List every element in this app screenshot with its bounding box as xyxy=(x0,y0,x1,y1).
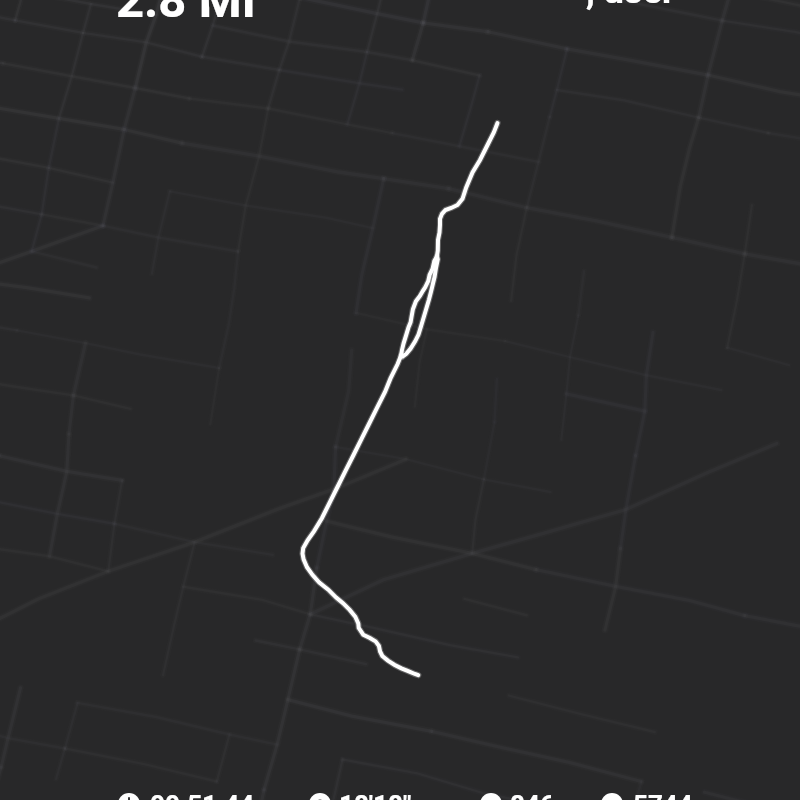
staticText: 18'18" xyxy=(339,790,412,800)
button[interactable]: 5744 xyxy=(601,790,694,800)
staticText: 00:51:44 xyxy=(150,790,255,800)
button[interactable]: 846 xyxy=(480,790,556,800)
staticText: 846 xyxy=(510,790,555,800)
staticText: 5744 xyxy=(633,790,693,800)
button[interactable]: 18'18" xyxy=(309,790,413,800)
button[interactable]: Activity route map xyxy=(0,0,800,800)
staticText: , user xyxy=(586,0,676,12)
button[interactable]: 00:51:44 xyxy=(118,790,256,800)
staticText: 2.8 MI xyxy=(116,0,256,29)
